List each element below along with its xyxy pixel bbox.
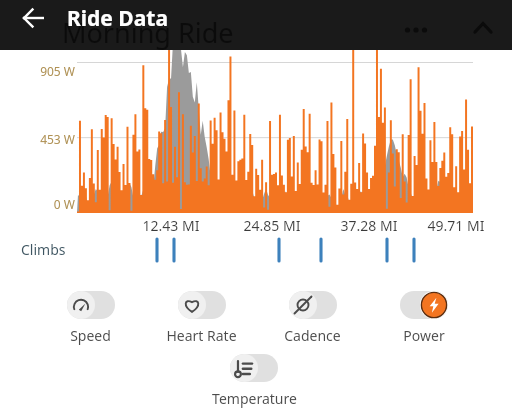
staticText: Power [403,326,445,345]
staticText: Speed [70,326,111,345]
staticText: 24.85 MI [232,216,312,235]
staticText: Ride Data [67,4,168,33]
staticText: Temperature [212,389,297,408]
staticText: 12.43 MI [131,216,211,235]
button[interactable]: Back [11,0,57,36]
staticText: 37.28 MI [329,216,409,235]
button[interactable]: Power [368,291,479,345]
staticText: 905 W [0,63,75,79]
button[interactable]: More options [398,18,434,40]
button[interactable]: Temperature [194,354,314,408]
staticText: Climbs [21,240,66,259]
staticText: 0 W [0,196,75,212]
button[interactable]: Cadence [257,291,368,345]
staticText: Cadence [284,326,341,345]
staticText: 49.71 MI [416,216,496,235]
button[interactable]: Speed [35,291,146,345]
staticText: 453 W [0,131,75,147]
button[interactable]: Collapse [469,18,497,40]
staticText: Morning Ride [62,14,234,51]
button[interactable]: Heart Rate [146,291,257,345]
staticText: Heart Rate [166,326,237,345]
